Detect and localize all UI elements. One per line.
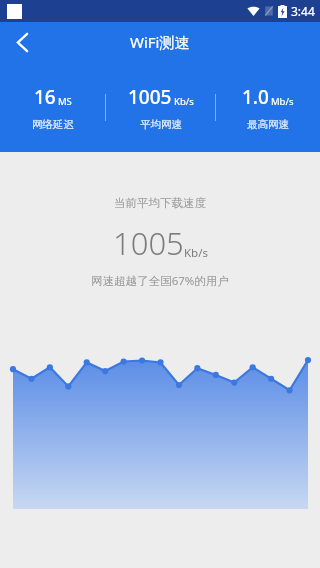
staticText: 网速超越了全国67%的用户 [91, 273, 229, 289]
staticText: 16 [34, 84, 56, 110]
button[interactable]: Back [0, 22, 44, 62]
staticText: 最高网速 [247, 118, 289, 131]
staticText: 1.0 [242, 84, 269, 110]
staticText: 平均网速 [140, 118, 182, 131]
staticText: Kb/s [184, 245, 208, 261]
staticText: WiFi测速 [130, 32, 190, 52]
button[interactable]: 16 [0, 62, 105, 152]
staticText: MS [58, 95, 72, 108]
staticText: 当前平均下载速度 [114, 196, 206, 210]
staticText: Mb/s [271, 95, 294, 108]
staticText: 1005 [113, 222, 184, 264]
staticText: Kb/s [174, 95, 194, 108]
button[interactable]: 1.0 [216, 62, 320, 152]
staticText: 1005 [128, 84, 172, 110]
button[interactable]: 1005 [106, 62, 215, 152]
staticText: 网络延迟 [32, 118, 74, 131]
staticText: 3:44 [291, 3, 315, 19]
